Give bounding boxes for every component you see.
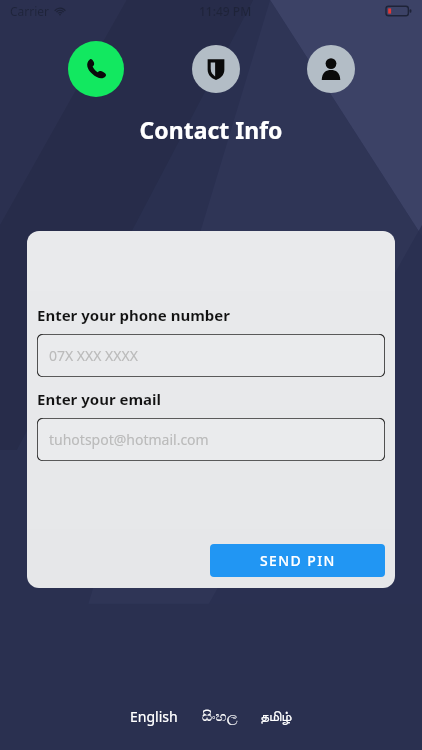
- button[interactable]: Profile: [307, 45, 355, 93]
- button[interactable]: tuhotspot@hotmail.com: [37, 418, 385, 461]
- button[interactable]: Security: [192, 45, 240, 93]
- button[interactable]: සිංහල: [200, 706, 240, 728]
- button[interactable]: Call: [68, 41, 124, 97]
- staticText: Enter your email: [37, 389, 162, 409]
- staticText: Carrier: [10, 3, 50, 19]
- staticText: தமிழ்: [260, 710, 292, 724]
- staticText: 07X XXX XXXX: [49, 346, 138, 365]
- staticText: SEND PIN: [260, 551, 336, 570]
- staticText: 11:49 PM: [199, 3, 252, 19]
- button[interactable]: தமிழ்: [258, 706, 294, 728]
- button[interactable]: SEND PIN: [210, 544, 385, 577]
- button[interactable]: English: [128, 703, 180, 730]
- button[interactable]: 07X XXX XXXX: [37, 334, 385, 377]
- staticText: සිංහල: [202, 710, 238, 724]
- staticText: English: [130, 707, 178, 726]
- staticText: tuhotspot@hotmail.com: [49, 430, 209, 449]
- staticText: Enter your phone number: [37, 305, 230, 325]
- staticText: Contact Info: [0, 114, 422, 145]
